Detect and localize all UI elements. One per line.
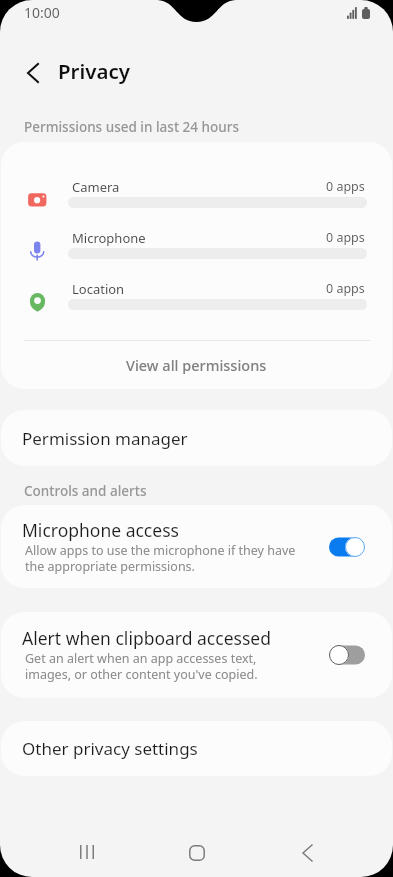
staticText: Camera — [72, 178, 120, 196]
staticText: 0 apps — [326, 280, 365, 297]
button[interactable]: Switch on — [329, 537, 365, 557]
staticText: Microphone access — [22, 518, 179, 542]
staticText: Other privacy settings — [22, 737, 198, 760]
staticText: 10:00 — [24, 3, 60, 22]
staticText: Alert when clipboard accessed — [22, 626, 271, 650]
button[interactable]: Alert when clipboard accessed — [1, 612, 392, 698]
staticText: View all permissions — [126, 355, 267, 375]
button[interactable]: Microphone access — [1, 505, 392, 588]
button[interactable]: Back — [15, 55, 50, 90]
staticText: Permission manager — [22, 427, 188, 450]
button[interactable]: Recent apps — [57, 823, 116, 877]
button[interactable]: Back — [278, 824, 337, 877]
button[interactable]: Other privacy settings — [1, 721, 392, 776]
staticText: Allow apps to use the microphone if they… — [25, 542, 296, 574]
staticText: Get an alert when an app accesses text, … — [25, 650, 258, 682]
staticText: Permissions used in last 24 hours — [24, 118, 239, 136]
button[interactable]: Permission manager — [1, 410, 392, 466]
button[interactable]: View all permissions — [1, 341, 392, 389]
staticText: Controls and alerts — [24, 482, 147, 500]
button[interactable]: Home — [167, 824, 226, 877]
button[interactable]: Switch off — [329, 645, 365, 665]
staticText: Microphone — [72, 229, 146, 247]
staticText: 0 apps — [326, 229, 365, 246]
staticText: Privacy — [58, 57, 131, 85]
staticText: 0 apps — [326, 178, 365, 195]
staticText: Location — [72, 280, 125, 298]
